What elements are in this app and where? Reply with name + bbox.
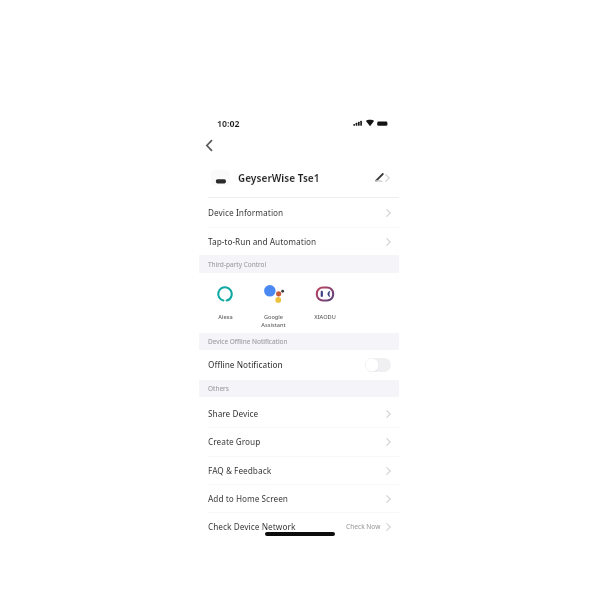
staticText: Create Group [208,436,261,447]
button[interactable]: Share Device [199,399,399,428]
button[interactable]: Check Device Network [199,512,399,541]
staticText: GeyserWise Tse1 [238,171,320,184]
staticText: 10:02 [217,118,240,130]
button[interactable]: Offline Notification [199,350,399,379]
button[interactable]: FAQ & Feedback [199,456,399,485]
staticText: Device Offline Notification [208,337,288,346]
button[interactable]: Device Information [199,198,399,227]
staticText: Alexa [218,313,233,321]
button[interactable]: Add to Home Screen [199,484,399,513]
button[interactable]: XIAODU [301,284,349,321]
staticText: Tap-to-Run and Automation [208,236,317,247]
button[interactable]: Create Group [199,427,399,456]
button[interactable]: Tap-to-Run and Automation [199,227,399,256]
staticText: FAQ & Feedback [208,465,272,476]
button[interactable]: Offline Notification switch [365,358,391,372]
staticText: Google Assistant [261,313,286,329]
staticText: Device Information [208,207,284,218]
button[interactable]: Rename device [370,169,388,187]
staticText: Add to Home Screen [208,493,288,504]
staticText: Third-party Control [208,260,267,269]
button[interactable]: Back [200,137,217,154]
staticText: Others [208,384,229,393]
staticText: Offline Notification [208,359,283,370]
staticText: XIAODU [314,313,336,321]
button[interactable]: Alexa [201,284,249,321]
button[interactable]: GeyserWise Tse1 [199,164,399,192]
button[interactable]: Google Assistant [249,284,297,329]
staticText: Share Device [208,408,259,419]
staticText: Check Device Network [208,521,296,532]
staticText: Check Now [346,522,381,531]
